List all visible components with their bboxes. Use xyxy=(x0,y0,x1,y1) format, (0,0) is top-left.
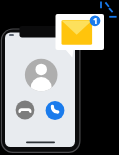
staticText: 1 xyxy=(93,15,98,26)
